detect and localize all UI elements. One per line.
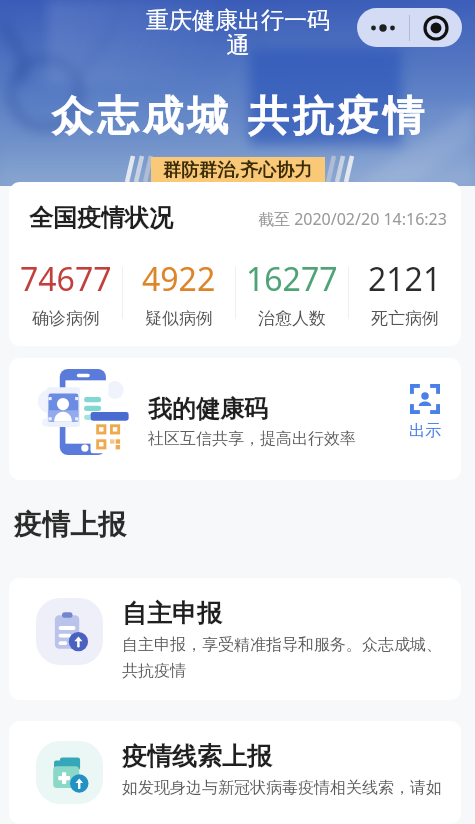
button[interactable]: 我的健康码 xyxy=(9,358,461,480)
staticText: 群防群治,齐心协力 xyxy=(163,157,313,182)
staticText: 如发现身边与新冠状病毒疫情相关线索，请如实上报详情事件情况 xyxy=(122,778,453,804)
staticText: 重庆健康出行一码 通 xyxy=(138,6,338,59)
staticText: 确诊病例 xyxy=(32,308,100,329)
staticText: 全国疫情状况 xyxy=(29,203,173,233)
staticText: 自主申报 xyxy=(122,598,222,629)
staticText: 4922 xyxy=(142,257,216,301)
staticText: 疑似病例 xyxy=(145,308,213,329)
button[interactable]: 自主申报 xyxy=(9,578,461,700)
button[interactable]: 疫情线索上报 xyxy=(9,721,461,824)
button[interactable]: 出示 xyxy=(405,380,445,445)
staticText: 疫情线索上报 xyxy=(122,741,272,772)
staticText: 截至 2020/02/20 14:16:23 xyxy=(258,208,447,230)
staticText: 16277 xyxy=(246,257,338,301)
staticText: 疫情上报 xyxy=(14,507,126,542)
staticText: 74677 xyxy=(20,257,112,301)
staticText: 社区互信共享，提高出行效率 xyxy=(148,429,356,449)
staticText: 治愈人数 xyxy=(258,308,326,329)
staticText: 2121 xyxy=(368,257,442,301)
staticText: 众志成城 共抗疫情 xyxy=(5,86,475,142)
staticText: 死亡病例 xyxy=(371,308,439,329)
button[interactable]: Close mini program xyxy=(410,8,462,47)
staticText: 出示 xyxy=(409,421,441,441)
staticText: 我的健康码 xyxy=(148,394,268,424)
button[interactable]: More options xyxy=(357,8,409,47)
staticText: 自主申报，享受精准指导和服务。众志成城、共抗疫情 xyxy=(122,635,453,680)
